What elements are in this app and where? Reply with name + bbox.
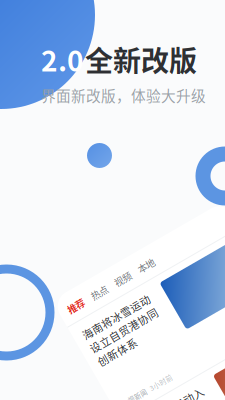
staticText: 界面新改版，体验大升级 <box>41 84 206 106</box>
staticText: 海南冰雪运动入 "100+N" 开放协同创新体系 <box>135 372 212 400</box>
staticText: 全新改版 <box>85 39 197 79</box>
staticText: 本地 <box>216 237 225 250</box>
staticText: 2.0 <box>41 39 84 79</box>
staticText: 海南将冰雪运动设立自贸港协同创新体系 <box>135 265 212 312</box>
